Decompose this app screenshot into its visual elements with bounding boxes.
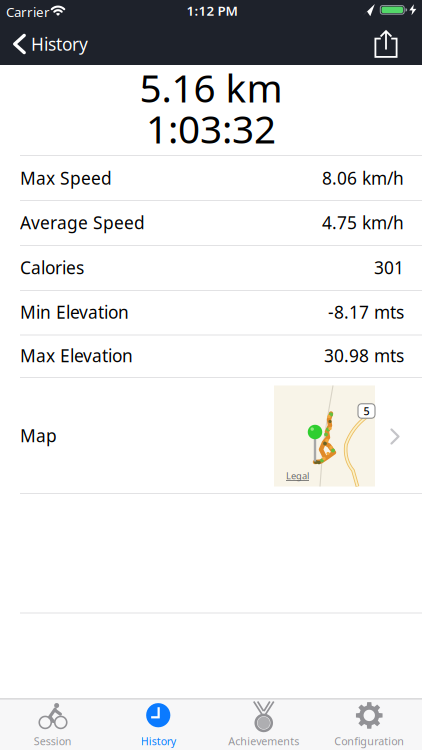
button[interactable]: Back: [13, 21, 88, 66]
staticText: Min Elevation: [20, 300, 129, 323]
staticText: 8.06 km/h: [322, 166, 404, 189]
staticText: Legal: [286, 469, 309, 482]
button[interactable]: Achievements: [213, 699, 315, 750]
staticText: 1:12 PM: [186, 2, 237, 19]
staticText: History: [141, 734, 176, 748]
staticText: Average Speed: [20, 211, 145, 234]
button[interactable]: Map: [0, 377, 422, 493]
staticText: Configuration: [334, 734, 404, 748]
staticText: Session: [34, 734, 72, 748]
staticText: 30.98 mts: [324, 344, 404, 367]
button[interactable]: Share: [374, 30, 397, 58]
staticText: Carrier: [6, 3, 50, 21]
button[interactable]: History: [107, 699, 209, 750]
button[interactable]: Configuration: [318, 699, 420, 750]
staticText: 1:03:32: [146, 103, 276, 154]
staticText: 5.16 km: [139, 62, 282, 113]
staticText: Calories: [20, 256, 84, 279]
staticText: Max Elevation: [20, 344, 133, 367]
staticText: -8.17 mts: [328, 300, 404, 323]
staticText: Max Speed: [20, 166, 112, 189]
staticText: 4.75 km/h: [322, 211, 404, 234]
staticText: History: [31, 32, 88, 55]
staticText: Achievements: [228, 734, 299, 748]
staticText: 5: [363, 404, 369, 418]
staticText: Map: [20, 424, 57, 447]
button[interactable]: Session: [2, 699, 104, 750]
staticText: 301: [374, 256, 404, 279]
